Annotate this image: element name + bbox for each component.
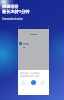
staticText: 最长支持1分钟	[2, 9, 30, 15]
staticText: Convenient voice	[2, 17, 23, 21]
button[interactable]: Keyboard	[21, 80, 26, 85]
staticText: 语音最长支持1分钟	[20, 75, 39, 78]
staticText: 按住说话，松开发送	[20, 72, 40, 75]
button[interactable]: Send	[40, 80, 45, 85]
staticText: 便捷语音	[2, 4, 19, 9]
button[interactable]: Record voice	[31, 80, 36, 85]
